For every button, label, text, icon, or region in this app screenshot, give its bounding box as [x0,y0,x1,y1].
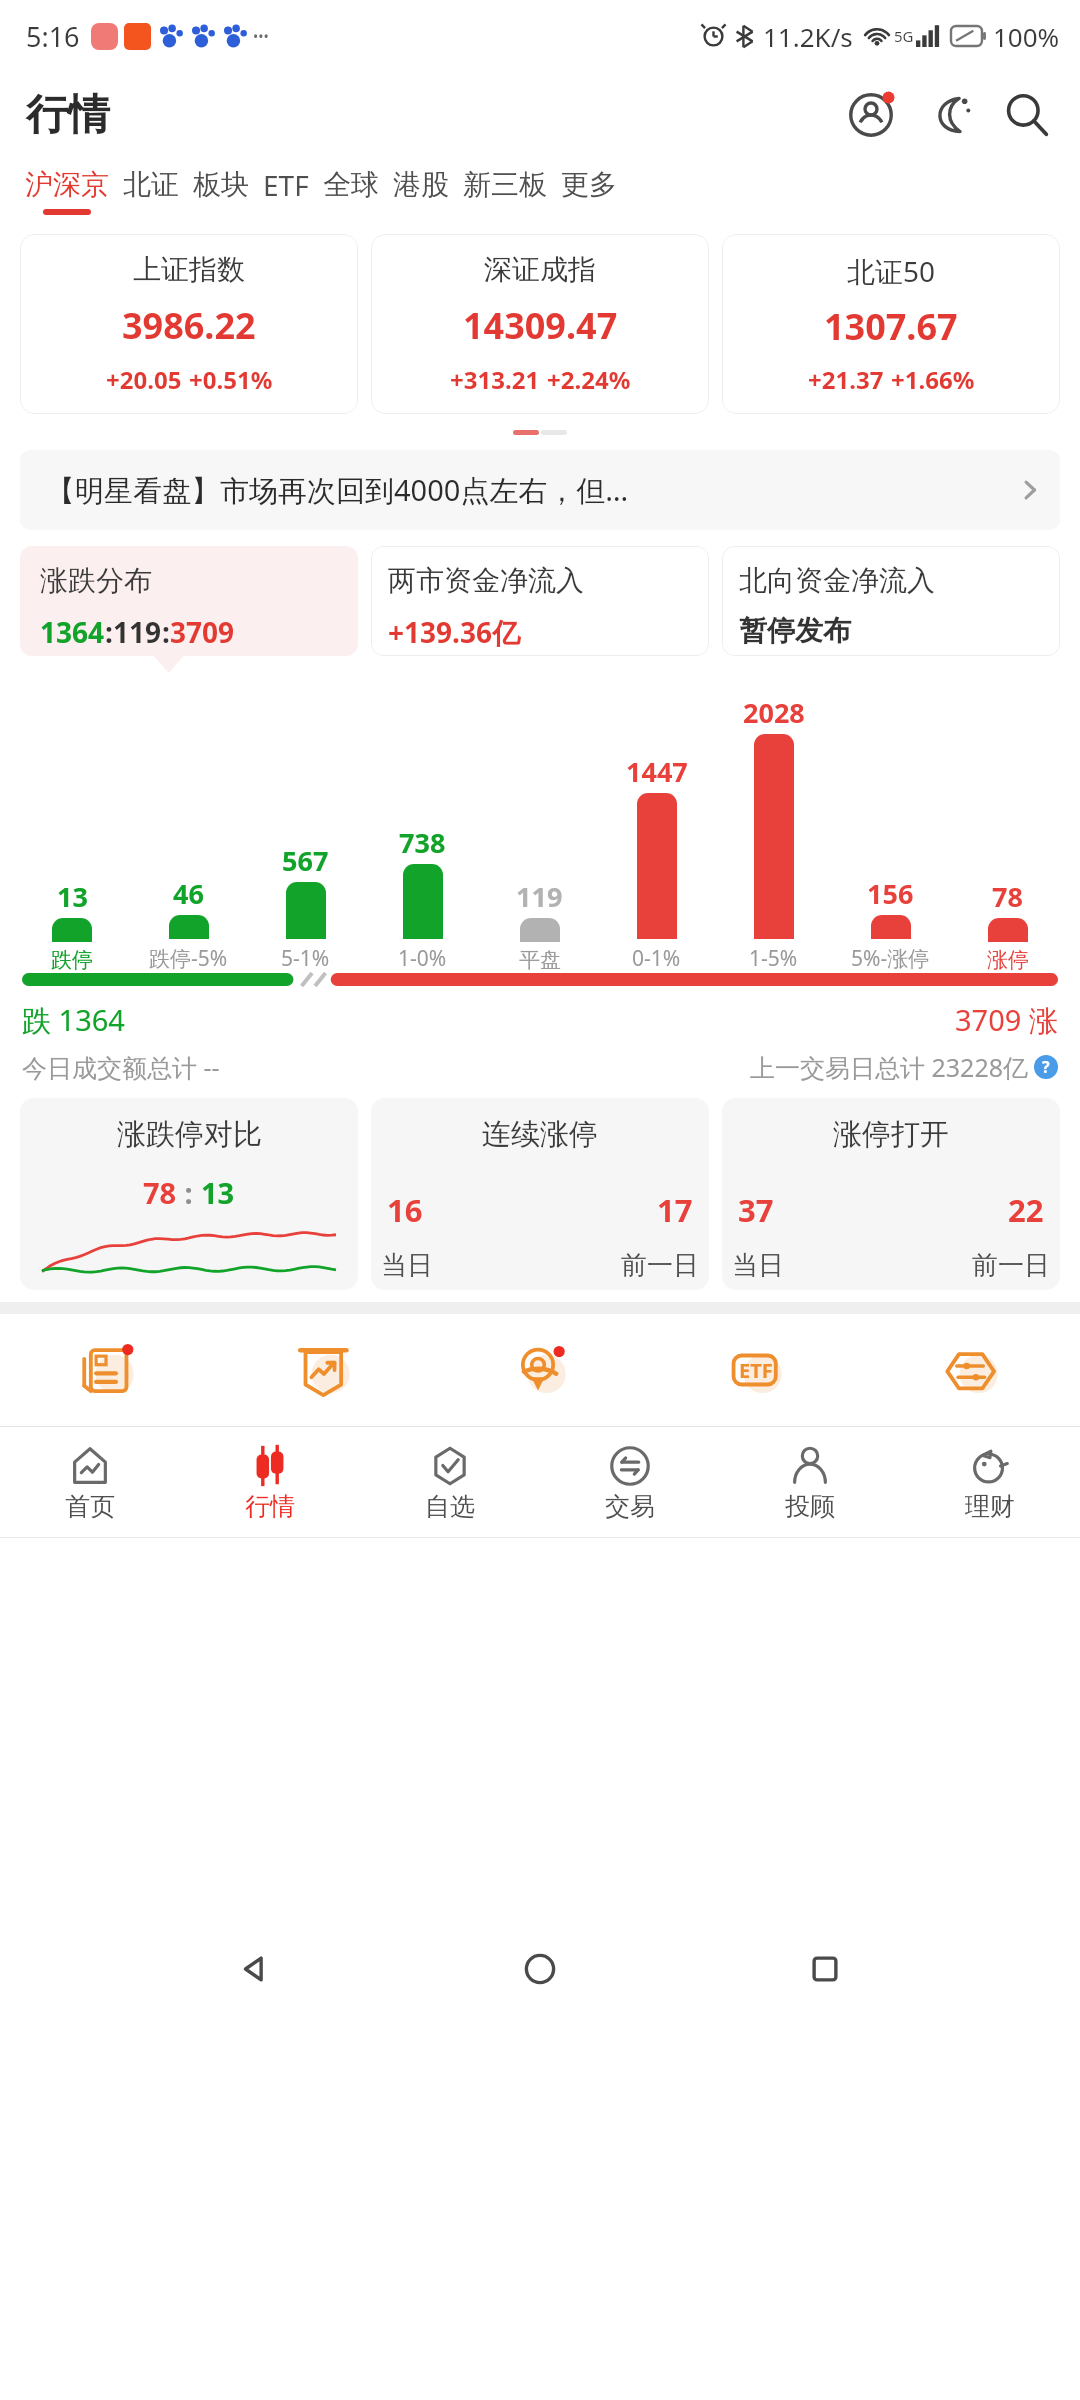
staticText: 2028 [743,694,805,731]
staticText: 两市资金净流入 [388,563,584,598]
staticText: 理财 [965,1491,1015,1522]
staticText: 78 [992,878,1023,915]
button[interactable]: Profile [842,86,900,144]
button[interactable]: 上证指数 [20,234,358,414]
staticText: 13 [57,878,88,915]
staticText: 78 [143,1173,177,1212]
button[interactable]: 738 [364,824,481,973]
staticText: 当日 [381,1249,433,1282]
button[interactable]: ETF [256,166,316,217]
button[interactable]: News [0,1314,216,1426]
staticText: 5-1% [281,944,330,973]
staticText: 5G [894,26,914,46]
staticText: 1447 [626,753,688,790]
staticText: 1-5% [749,944,798,973]
staticText: 119 [516,878,563,915]
staticText: +2.24% [547,363,631,396]
staticText: 北证 [123,167,179,202]
button[interactable]: 自选 [360,1427,540,1537]
button[interactable]: 涨停打开 [722,1098,1060,1290]
button[interactable]: 涨跌分布 [20,546,358,656]
button[interactable]: Recents [795,1939,855,1999]
button[interactable]: 深证成指 [371,234,709,414]
staticText: 板块 [193,167,249,202]
staticText: : [162,613,170,651]
button[interactable]: 北证50 [722,234,1060,414]
button[interactable]: 更多 [554,167,624,215]
staticText: 全球 [323,167,379,202]
button[interactable]: 港股 [386,167,456,215]
staticText: 涨跌分布 [40,563,152,598]
button[interactable]: 首页 [0,1427,180,1537]
button[interactable]: Radar [432,1314,648,1426]
staticText: 前一日 [621,1249,699,1282]
button[interactable]: Tools [864,1314,1080,1426]
button[interactable]: 交易 [540,1427,720,1537]
button[interactable]: Home [510,1939,570,1999]
staticText: 沪深京 [25,167,109,202]
staticText: 跌停 [51,947,93,973]
staticText: +139.36亿 [388,613,520,651]
button[interactable]: 【明星看盘】市场再次回到4000点左右，但… [20,450,1060,530]
button[interactable]: Search [998,86,1056,144]
staticText: 当日 [732,1249,784,1282]
staticText: 5%-涨停 [851,944,930,973]
staticText: 上一交易日总计 23228亿 [750,1050,1029,1084]
button[interactable]: 46 [130,875,247,973]
staticText: 1307.67 [824,302,958,351]
staticText: ••• [253,27,269,46]
button[interactable]: 567 [247,842,364,973]
button[interactable]: 北证 [116,167,186,215]
button[interactable]: 2028 [715,694,832,973]
button[interactable]: Night mode [920,86,978,144]
staticText: 0-1% [632,944,681,973]
staticText: 11.2K/s [763,19,853,54]
staticText: 156 [867,875,914,912]
staticText: 3709 涨 [955,1000,1058,1040]
button[interactable]: Back [225,1939,285,1999]
staticText: 投顾 [785,1491,835,1522]
button[interactable]: 156 [832,875,949,973]
button[interactable]: Info [1034,1055,1058,1079]
button[interactable]: ETF [648,1314,864,1426]
button[interactable]: 板块 [186,167,256,215]
button[interactable]: Ranking [216,1314,432,1426]
button[interactable]: 新三板 [456,167,554,215]
staticText: 今日成交额总计 -- [22,1050,220,1084]
button[interactable]: 全球 [316,167,386,215]
button[interactable]: 涨跌停对比 [20,1098,358,1290]
staticText: : [177,1173,201,1212]
staticText: 5:16 [26,18,80,55]
staticText: 北向资金净流入 [739,563,935,598]
button[interactable]: 119 [481,878,598,973]
staticText: 自选 [425,1491,475,1522]
staticText: 14309.47 [463,301,618,350]
button[interactable]: 连续涨停 [371,1098,709,1290]
button[interactable]: 13 [14,878,130,973]
staticText: 119 [113,613,162,651]
button[interactable]: 两市资金净流入 [371,546,709,656]
staticText: 前一日 [972,1249,1050,1282]
staticText: 涨停 [987,947,1029,973]
staticText: 738 [399,824,446,861]
staticText: +1.66% [891,363,975,396]
button[interactable]: 投顾 [720,1427,900,1537]
staticText: 3709 [170,613,235,651]
staticText: 16 [387,1189,423,1231]
button[interactable]: 北向资金净流入 [722,546,1060,656]
staticText: 【明星看盘】市场再次回到4000点左右，但… [46,470,1010,510]
staticText: 100% [993,19,1060,54]
button[interactable]: 1447 [598,753,715,973]
staticText: 北证50 [847,252,936,290]
staticText: : [105,613,113,651]
staticText: 13 [201,1173,235,1212]
staticText: 行情 [26,89,110,142]
staticText: 深证成指 [484,252,596,287]
staticText: 46 [173,875,204,912]
staticText: 更多 [561,167,617,202]
button[interactable]: 行情 [180,1427,360,1537]
button[interactable]: 78 [949,878,1066,973]
staticText: 首页 [65,1491,115,1522]
button[interactable]: 沪深京 [18,167,116,215]
button[interactable]: 理财 [900,1427,1080,1537]
